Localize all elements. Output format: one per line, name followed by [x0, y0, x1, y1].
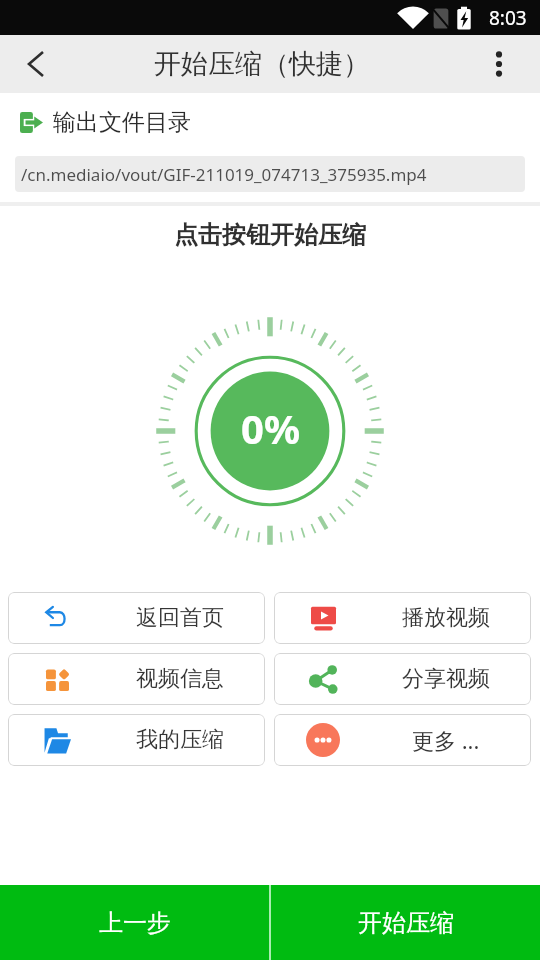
button[interactable]: 我的压缩 — [8, 714, 265, 766]
button[interactable]: 视频信息 — [8, 653, 265, 705]
staticText: 上一步 — [99, 908, 171, 938]
button[interactable]: 返回首页 — [8, 592, 265, 644]
button[interactable]: 上一步 — [0, 885, 269, 960]
button[interactable]: 播放视频 — [274, 592, 531, 644]
staticText: 我的压缩 — [136, 726, 224, 754]
button[interactable]: 分享视频 — [274, 653, 531, 705]
staticText: 开始压缩（快捷） — [154, 47, 370, 81]
staticText: 返回首页 — [136, 604, 224, 632]
staticText: 分享视频 — [402, 665, 490, 693]
staticText: 点击按钮开始压缩 — [174, 220, 366, 250]
button[interactable]: 开始压缩 — [271, 885, 540, 960]
staticText: 播放视频 — [402, 604, 490, 632]
button[interactable]: 更多 ... — [274, 714, 531, 766]
staticText: 0% — [241, 401, 300, 455]
staticText: 更多 ... — [412, 725, 480, 755]
staticText: /cn.mediaio/vout/GIF-211019_074713_37593… — [21, 163, 427, 186]
staticText: 视频信息 — [136, 665, 224, 693]
staticText: 输出文件目录 — [53, 108, 191, 137]
button[interactable]: More options — [457, 35, 540, 93]
staticText: 8:03 — [489, 5, 527, 31]
button[interactable]: Back — [0, 35, 72, 93]
staticText: 开始压缩 — [358, 908, 454, 938]
